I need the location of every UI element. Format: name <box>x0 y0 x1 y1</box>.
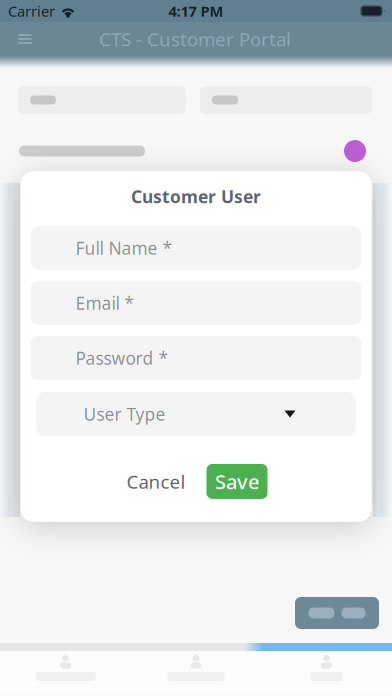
button[interactable]: Customers <box>131 651 261 694</box>
button[interactable]: Save <box>206 464 267 499</box>
staticText: Email * <box>75 291 134 314</box>
button[interactable]: Menu <box>11 25 39 53</box>
staticText: User Type <box>83 402 165 425</box>
staticText: Password * <box>75 346 168 369</box>
staticText: Cancel <box>126 469 185 494</box>
button[interactable]: Email * <box>30 281 361 325</box>
staticText: Customer User <box>131 185 261 208</box>
button[interactable]: My Dashboard <box>0 651 131 694</box>
button[interactable]: Cancel <box>110 460 201 503</box>
button[interactable]: Full Name * <box>30 226 361 270</box>
staticText: Carrier <box>8 1 55 21</box>
button[interactable]: Password * <box>30 336 361 380</box>
staticText: 4:17 PM <box>168 1 223 21</box>
button[interactable]: Users <box>261 651 392 694</box>
staticText: CTS - Customer Portal <box>99 27 291 51</box>
button[interactable]: User Type <box>30 392 361 436</box>
staticText: Save <box>215 468 259 495</box>
staticText: Full Name * <box>75 236 172 259</box>
